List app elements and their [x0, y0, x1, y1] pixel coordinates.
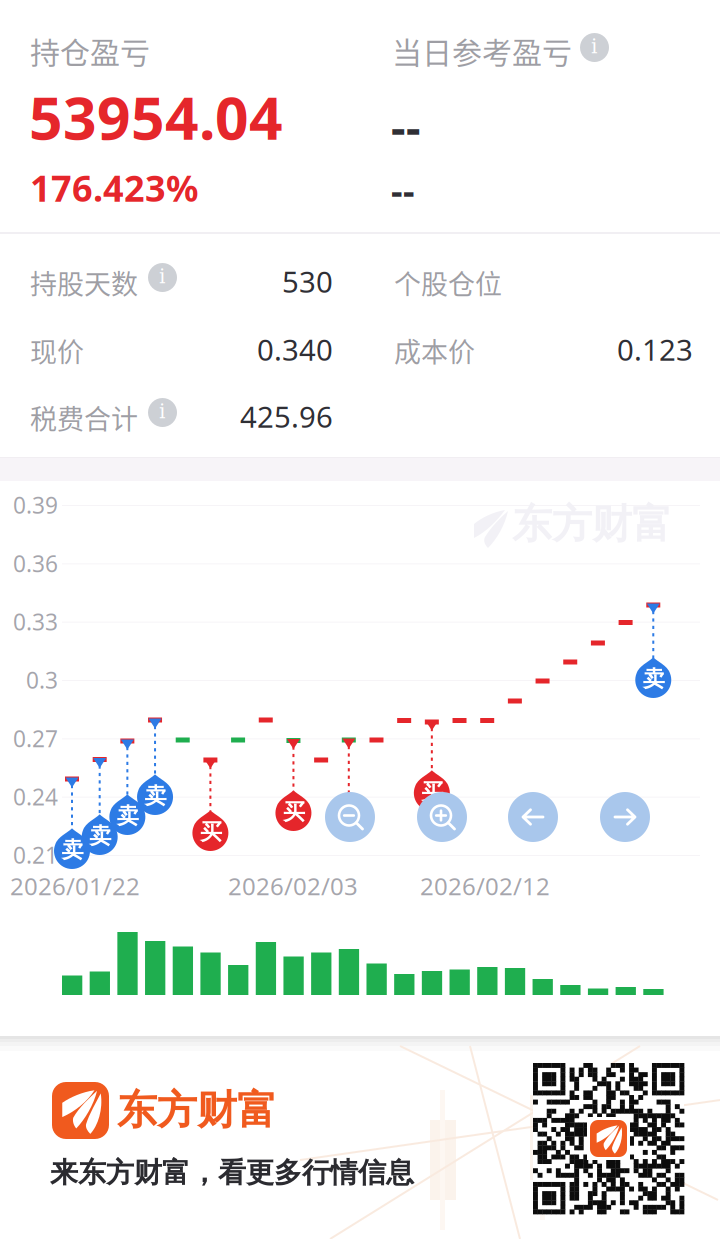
staticText: i [159, 264, 165, 288]
staticText: 成本价 [394, 331, 475, 370]
button[interactable]: Pan left [508, 792, 558, 842]
staticText: 2026/02/12 [420, 870, 550, 902]
staticText: 2026/02/03 [228, 870, 358, 902]
staticText: 东方财富 [117, 1085, 277, 1135]
staticText: 卖 [144, 782, 166, 810]
staticText: 0.340 [257, 330, 333, 369]
staticText: 0.36 [13, 548, 58, 578]
button[interactable]: Zoom in [417, 792, 467, 842]
staticText: i [159, 399, 165, 423]
staticText: 0.27 [13, 723, 58, 753]
staticText: 卖 [61, 836, 83, 864]
staticText: 卖 [643, 665, 665, 693]
staticText: -- [391, 96, 421, 156]
button[interactable]: Pan right [600, 792, 650, 842]
staticText: 2026/01/22 [10, 870, 140, 902]
staticText: 现价 [30, 331, 84, 370]
staticText: -- [391, 166, 415, 214]
staticText: 税费合计 [30, 398, 138, 437]
staticText: 卖 [89, 822, 111, 850]
staticText: 当日参考盈亏 [392, 29, 572, 72]
staticText: 425.96 [240, 397, 333, 436]
staticText: 530 [282, 262, 333, 301]
staticText: 东方财富 [512, 499, 672, 549]
staticText: 0.33 [13, 607, 58, 637]
staticText: 0.24 [13, 782, 58, 812]
staticText: 0.123 [617, 330, 693, 369]
staticText: i [591, 34, 597, 58]
staticText: 买 [421, 778, 443, 806]
staticText: 个股仓位 [394, 263, 502, 302]
button[interactable]: Zoom out [325, 792, 375, 842]
staticText: 持仓盈亏 [30, 29, 150, 72]
staticText: 买 [283, 798, 305, 826]
staticText: 卖 [117, 802, 139, 830]
staticText: 买 [200, 818, 222, 846]
staticText: 0.21 [13, 840, 58, 870]
staticText: 176.423% [30, 164, 198, 212]
staticText: 0.39 [13, 490, 58, 520]
staticText: 买 [338, 799, 360, 827]
staticText: 53954.04 [29, 78, 283, 156]
staticText: 来东方财富，看更多行情信息 [50, 1155, 414, 1190]
staticText: 0.3 [26, 665, 58, 695]
staticText: 持股天数 [30, 263, 138, 302]
